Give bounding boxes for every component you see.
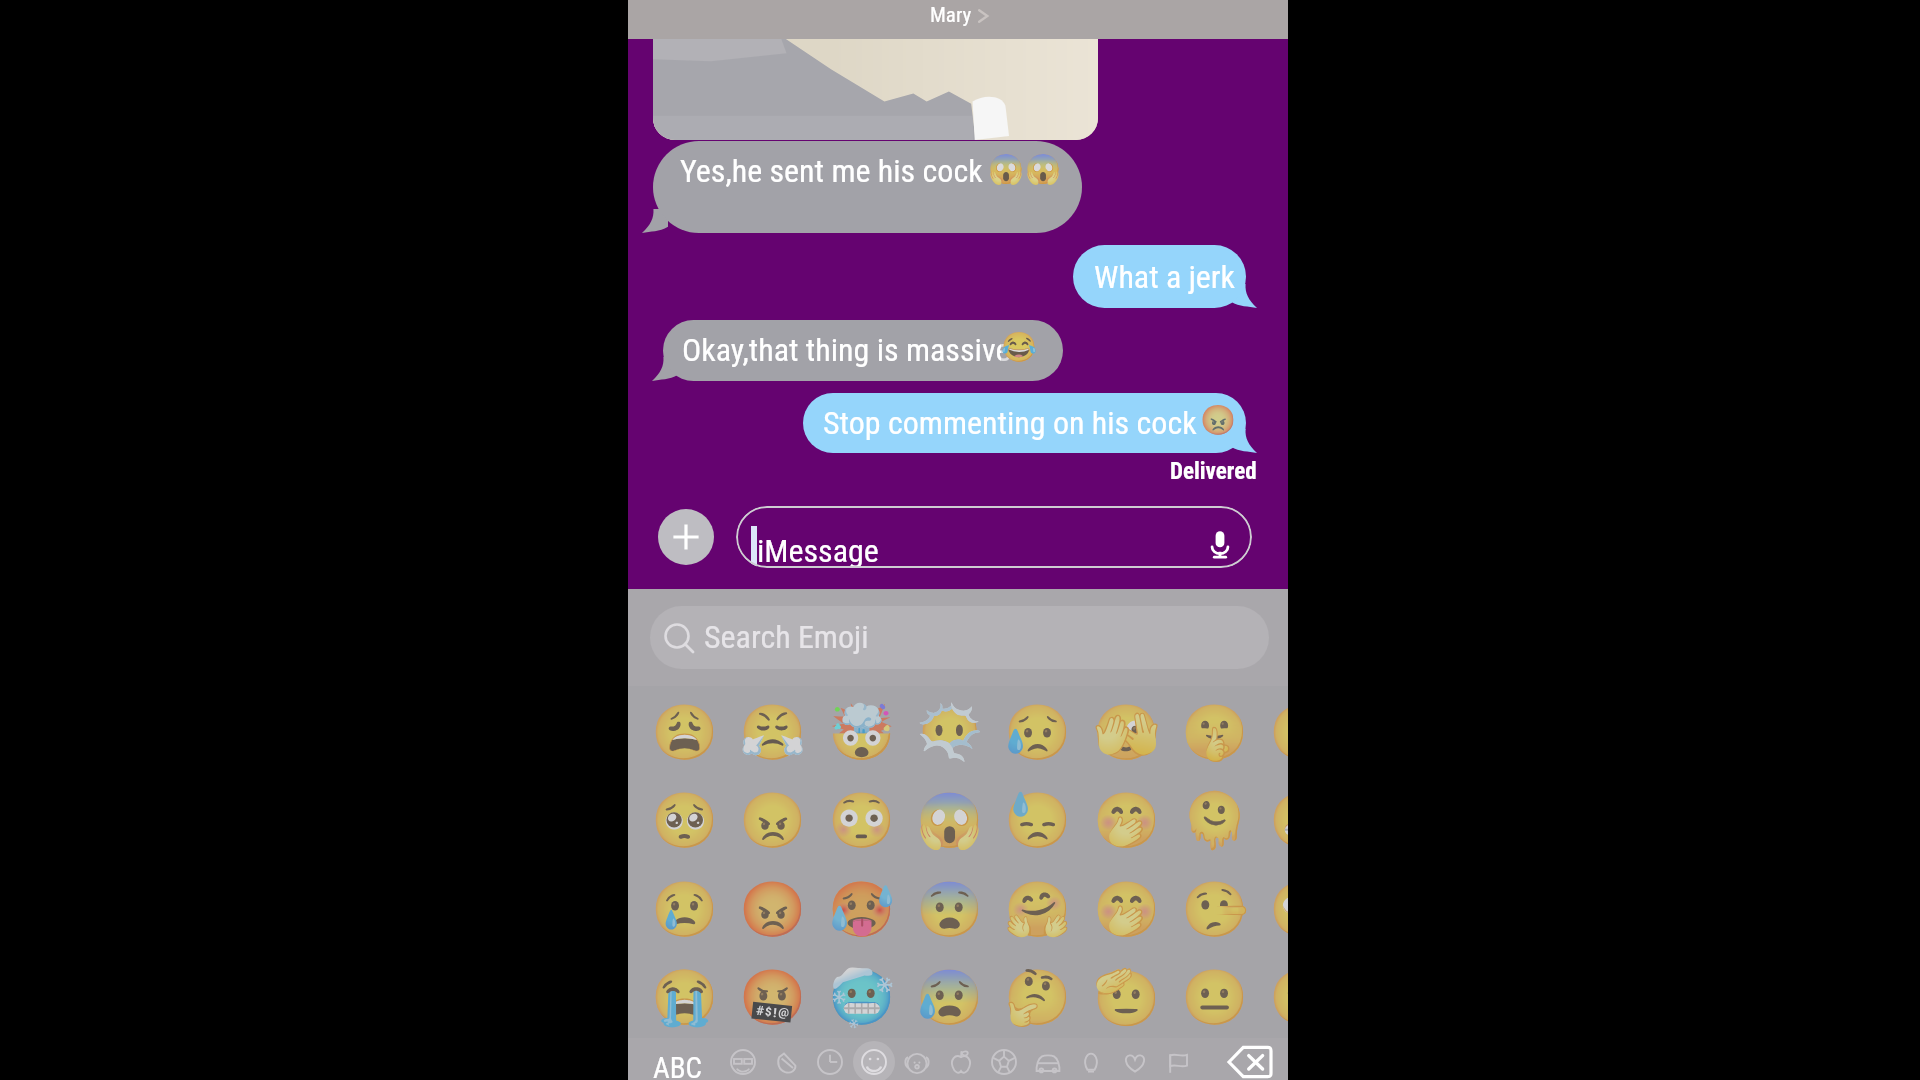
staticText: 🫡 [1093,966,1161,1029]
staticText: 🫣 [1093,701,1161,764]
button[interactable]: Activity [983,1041,1025,1080]
staticText: 😐 [1181,966,1249,1029]
button[interactable]: Objects [1070,1041,1112,1080]
staticText: 🥺 [651,789,719,852]
staticText: Mary [930,3,972,28]
staticText: 🥶 [828,966,896,1029]
button[interactable]: 🥵 [818,865,906,953]
button[interactable]: 😳 [818,776,906,864]
button[interactable]: 🤭 [1083,776,1171,864]
button[interactable]: Food and drink [940,1041,982,1080]
button[interactable]: 😩 [641,688,729,776]
staticText: Search Emoji [704,618,869,656]
button[interactable]: 🤯 [818,688,906,776]
staticText: 🤭 [1093,789,1161,852]
staticText: 😡 [1200,403,1237,437]
button[interactable]: 🤬 [729,953,817,1041]
staticText: 🤫 [1181,701,1249,764]
staticText: 😰 [916,966,984,1029]
staticText: 🤥 [1181,878,1249,941]
button[interactable]: Yes,he sent me his cock [653,141,1082,233]
button[interactable]: Smileys [722,1041,764,1080]
button[interactable]: 😰 [906,953,994,1041]
button[interactable]: 😤 [729,688,817,776]
button[interactable]: Recents [809,1041,851,1080]
button[interactable]: 😱 [906,776,994,864]
button[interactable]: 🙄 [1259,865,1288,953]
staticText: 😥 [1004,701,1072,764]
button[interactable]: Mary [628,0,1288,39]
staticText: 😡 [739,878,807,941]
button[interactable]: 🫣 [1083,688,1171,776]
button[interactable]: 😓 [994,776,1082,864]
button[interactable]: Backspace [1228,1042,1272,1080]
button[interactable]: iMessage [736,506,1252,568]
staticText: Yes,he sent me his cock [680,152,983,190]
button[interactable]: 🥶 [818,953,906,1041]
button[interactable]: 🤭 [1083,865,1171,953]
button[interactable]: Search Emoji [650,606,1269,669]
staticText: 😤 [739,701,807,764]
button[interactable]: 😮 [1259,688,1288,776]
button[interactable]: Okay,that thing is massive [663,320,1063,381]
button[interactable]: 🤗 [994,865,1082,953]
staticText: 🤔 [1004,966,1072,1029]
staticText: What a jerk [1094,258,1235,296]
button[interactable]: 🫡 [1083,953,1171,1041]
button[interactable]: ABC [653,1051,702,1080]
staticText: 😂 [1001,330,1038,364]
button[interactable]: 😥 [994,688,1082,776]
button[interactable]: Add attachment [658,509,714,565]
staticText: Delivered [1170,458,1257,485]
staticText: 😓 [1004,789,1072,852]
staticText: 😱 [916,789,984,852]
button[interactable]: Smileys and people [853,1041,895,1080]
button[interactable]: Stop commenting on his cock [803,393,1246,453]
button[interactable]: 🥺 [641,776,729,864]
button[interactable]: 🤫 [1171,688,1259,776]
staticText: 😶‍🌫️ [916,701,984,764]
staticText: 😱 [1025,152,1062,186]
button[interactable]: 🤔 [994,953,1082,1041]
staticText: 😱 [988,152,1025,186]
button[interactable]: 😬 [1259,776,1288,864]
staticText: ABC [653,1051,702,1080]
button[interactable]: 😢 [641,865,729,953]
staticText: 😬 [1269,789,1288,852]
button[interactable]: Travel and places [1027,1041,1069,1080]
staticText: iMessage [757,532,879,568]
button[interactable]: 😨 [906,865,994,953]
staticText: 🤗 [1004,878,1072,941]
button[interactable] [653,39,1098,140]
staticText: 😑 [1269,966,1288,1029]
staticText: Okay,that thing is massive [682,331,1011,369]
button[interactable]: 😡 [729,865,817,953]
staticText: 🤯 [828,701,896,764]
button[interactable]: Animals and nature [896,1041,938,1080]
button[interactable]: 😠 [729,776,817,864]
staticText: 😨 [916,878,984,941]
staticText: 🥵 [828,878,896,941]
button[interactable]: 🫠 [1171,776,1259,864]
button[interactable]: Dictate [1204,524,1236,568]
button[interactable]: Hands [766,1041,808,1080]
staticText: 😢 [651,878,719,941]
button[interactable]: What a jerk [1073,245,1246,308]
staticText: 🤭 [1093,878,1161,941]
staticText: Stop commenting on his cock [823,404,1197,442]
button[interactable]: 🤥 [1171,865,1259,953]
staticText: 😮 [1269,701,1288,764]
button[interactable]: 😭 [641,953,729,1041]
button[interactable]: 😑 [1259,953,1288,1041]
button[interactable]: Flags [1157,1041,1199,1080]
staticText: 😠 [739,789,807,852]
staticText: 🫠 [1181,789,1249,852]
staticText: 🙄 [1269,878,1288,941]
staticText: 😭 [651,966,719,1029]
button[interactable]: 😶‍🌫️ [906,688,994,776]
button[interactable]: 😐 [1171,953,1259,1041]
staticText: 🤬 [739,966,807,1029]
staticText: 😳 [828,789,896,852]
staticText: 😩 [651,701,719,764]
button[interactable]: Symbols [1114,1041,1156,1080]
